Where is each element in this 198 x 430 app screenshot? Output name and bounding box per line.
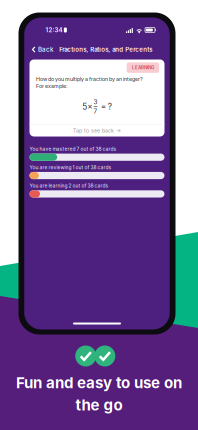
staticText: Tap to see back → (73, 127, 121, 134)
staticText: You are learning 2 out of 38 cards (29, 183, 108, 189)
staticText: 7 (93, 107, 97, 115)
staticText: 12:34 (45, 26, 62, 34)
staticText: = ? (99, 102, 112, 112)
staticText: 3 (93, 98, 97, 106)
staticText: How do you multiply a fraction by an int… (36, 76, 143, 82)
staticText: LEARNING (132, 65, 154, 70)
button[interactable]: Back (32, 44, 55, 55)
staticText: For example: (36, 83, 68, 89)
staticText: You have mastered 7 out of 38 cards (29, 146, 116, 152)
staticText: Back (38, 46, 54, 53)
staticText: Fun and easy to use on (16, 374, 182, 392)
staticText: the go (75, 396, 122, 414)
staticText: 5× (82, 102, 92, 112)
staticText: You are reviewing 1 out of 38 cards (29, 164, 111, 170)
button[interactable]: Tap to see back → (29, 124, 164, 136)
staticText: Fractions, Ratios, and Percents (59, 46, 152, 53)
